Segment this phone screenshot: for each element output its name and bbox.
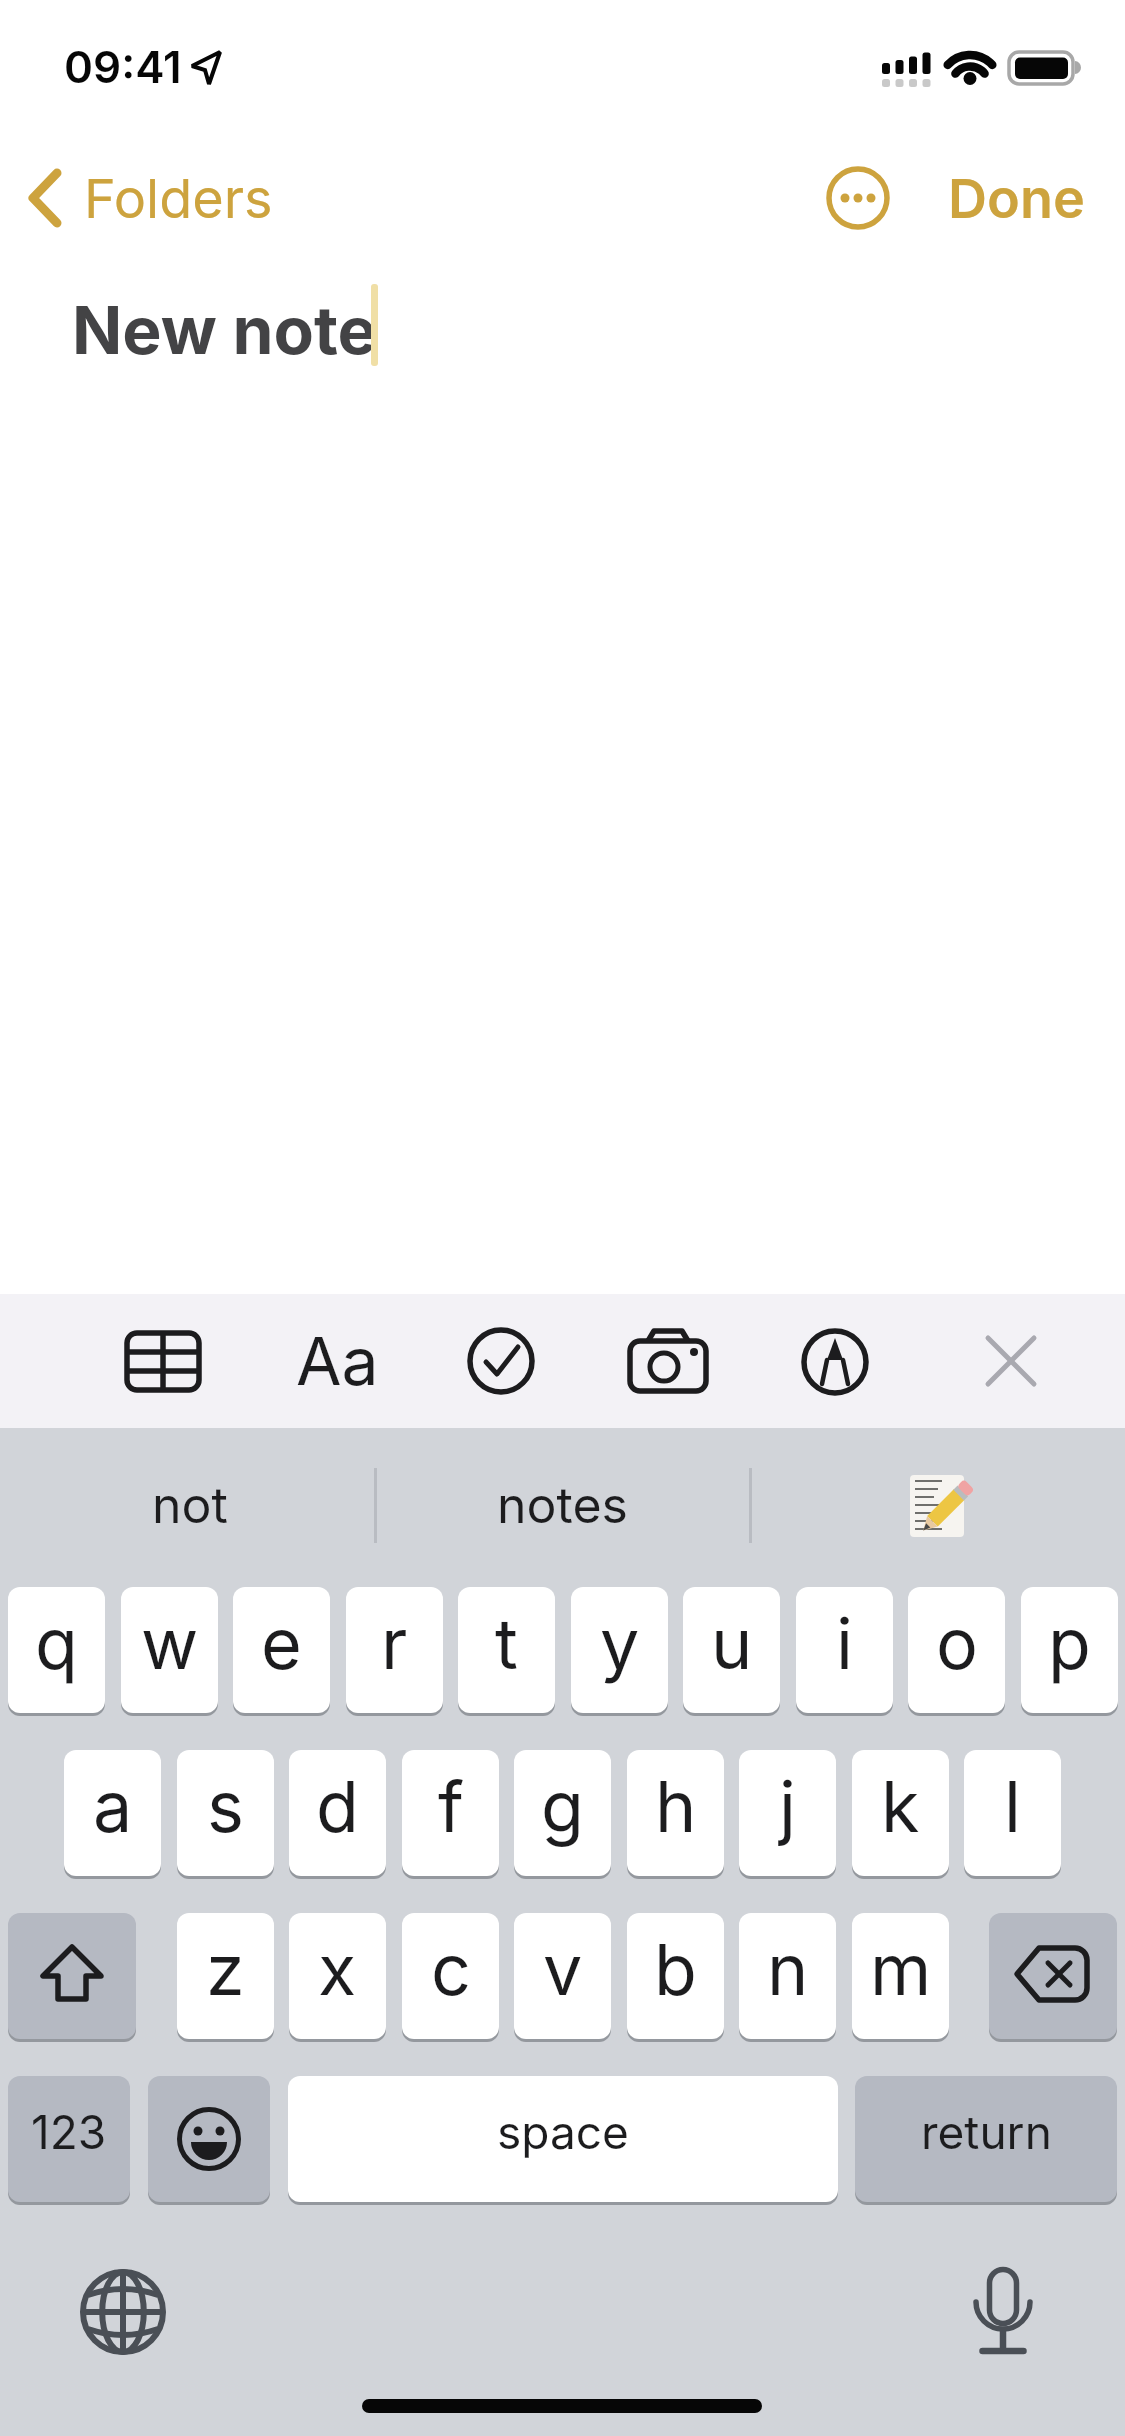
button[interactable]: v <box>514 1913 611 2039</box>
staticText: h <box>655 1764 697 1849</box>
button[interactable] <box>148 2076 270 2202</box>
staticText: d <box>316 1764 359 1849</box>
button[interactable] <box>790 1316 880 1406</box>
staticText: z <box>206 1927 245 2012</box>
staticText: u <box>711 1601 753 1686</box>
staticText: j <box>779 1764 796 1849</box>
button[interactable]: return <box>855 2076 1117 2202</box>
button[interactable]: q <box>8 1587 105 1713</box>
staticText: r <box>381 1601 408 1686</box>
button[interactable] <box>623 1316 713 1406</box>
button[interactable] <box>20 160 270 236</box>
button[interactable]: Done <box>948 162 1125 234</box>
staticText: i <box>836 1601 853 1686</box>
button[interactable] <box>906 1473 970 1537</box>
button[interactable]: space <box>288 2076 838 2202</box>
staticText: Folders <box>84 166 273 231</box>
button[interactable]: k <box>852 1750 949 1876</box>
button[interactable] <box>948 2255 1058 2365</box>
button[interactable]: w <box>121 1587 218 1713</box>
button[interactable] <box>456 1316 546 1406</box>
button[interactable] <box>989 1913 1117 2039</box>
button[interactable]: y <box>571 1587 668 1713</box>
staticText: not <box>152 1475 228 1535</box>
button[interactable]: e <box>233 1587 330 1713</box>
staticText: q <box>35 1601 78 1686</box>
staticText: w <box>141 1601 199 1686</box>
button[interactable]: n <box>739 1913 836 2039</box>
button[interactable]: z <box>177 1913 274 2039</box>
staticText: space <box>497 2104 629 2160</box>
staticText: f <box>438 1764 464 1849</box>
staticText: s <box>207 1764 244 1849</box>
button[interactable]: r <box>346 1587 443 1713</box>
button[interactable] <box>118 1316 208 1406</box>
staticText: e <box>261 1601 302 1686</box>
button[interactable]: p <box>1021 1587 1118 1713</box>
staticText: m <box>870 1927 932 2012</box>
staticText: 123 <box>31 2104 107 2160</box>
button[interactable]: c <box>402 1913 499 2039</box>
staticText: n <box>767 1927 809 2012</box>
staticText: y <box>600 1601 640 1686</box>
staticText: g <box>541 1764 584 1849</box>
staticText: c <box>431 1927 471 2012</box>
button[interactable] <box>826 166 890 230</box>
staticText: l <box>1004 1764 1021 1849</box>
button[interactable]: m <box>852 1913 949 2039</box>
button[interactable]: not <box>40 1467 340 1543</box>
staticText: Aa <box>296 1321 379 1401</box>
button[interactable]: notes <box>412 1467 712 1543</box>
button[interactable]: b <box>627 1913 724 2039</box>
button[interactable]: d <box>289 1750 386 1876</box>
button[interactable]: 123 <box>8 2076 130 2202</box>
staticText: x <box>318 1927 357 2012</box>
button[interactable]: l <box>964 1750 1061 1876</box>
button[interactable]: s <box>177 1750 274 1876</box>
button[interactable]: h <box>627 1750 724 1876</box>
button[interactable]: i <box>796 1587 893 1713</box>
button[interactable]: j <box>739 1750 836 1876</box>
staticText: v <box>543 1927 583 2012</box>
staticText: p <box>1048 1601 1091 1686</box>
staticText: t <box>495 1601 518 1686</box>
button[interactable] <box>8 1913 136 2039</box>
button[interactable]: f <box>402 1750 499 1876</box>
staticText: k <box>881 1764 920 1849</box>
button[interactable] <box>293 1316 383 1406</box>
staticText: New note <box>72 290 377 370</box>
staticText: Done <box>948 166 1085 231</box>
button[interactable] <box>68 2257 178 2367</box>
button[interactable]: o <box>908 1587 1005 1713</box>
staticText: return <box>921 2104 1052 2160</box>
staticText: 09:41 <box>64 40 182 93</box>
staticText: a <box>93 1764 133 1849</box>
button[interactable]: u <box>683 1587 780 1713</box>
staticText: notes <box>497 1475 628 1535</box>
button[interactable]: a <box>64 1750 161 1876</box>
button[interactable]: x <box>289 1913 386 2039</box>
staticText: b <box>654 1927 697 2012</box>
button[interactable] <box>966 1316 1056 1406</box>
staticText: o <box>936 1601 978 1686</box>
button[interactable]: g <box>514 1750 611 1876</box>
button[interactable]: t <box>458 1587 555 1713</box>
